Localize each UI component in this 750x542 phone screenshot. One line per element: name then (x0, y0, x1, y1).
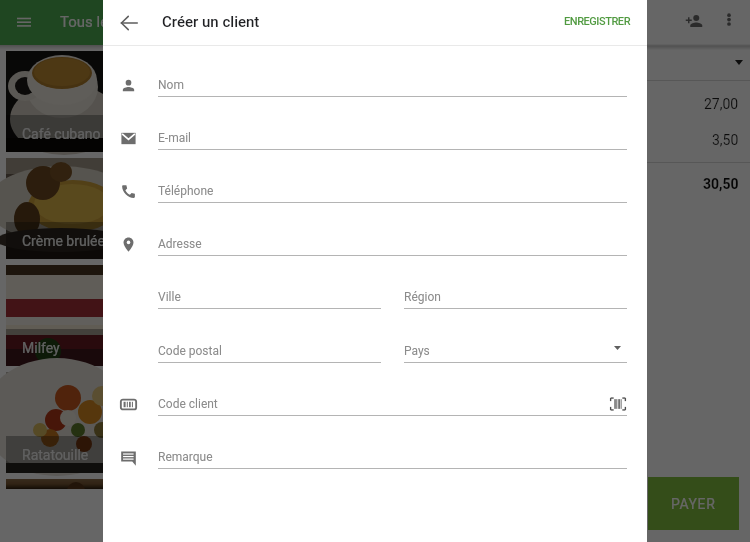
button[interactable]: PAYER (648, 477, 739, 530)
button[interactable]: Code client (158, 389, 627, 415)
staticText: Créer un client (162, 13, 260, 31)
button[interactable]: Add customer (673, 4, 713, 44)
button[interactable]: Café cubano (6, 51, 641, 152)
button[interactable]: Crème brulée (6, 158, 641, 259)
other: Select country (614, 346, 621, 350)
staticText: Nom (158, 78, 184, 92)
button[interactable]: Milfey (6, 265, 641, 366)
staticText: Région (404, 290, 441, 304)
other: Scan barcode (609, 395, 627, 413)
button[interactable]: Menu (8, 8, 40, 40)
staticText: Ville (158, 290, 181, 304)
staticText: Code postal (158, 344, 222, 358)
button[interactable]: Ratatouille (6, 372, 641, 473)
button[interactable]: Région (404, 282, 627, 308)
staticText: PAYER (671, 496, 716, 512)
button[interactable]: Ville (158, 282, 381, 308)
button[interactable]: Back (111, 5, 147, 41)
button[interactable]: Remarque (158, 442, 627, 468)
staticText: Milfey (22, 340, 60, 356)
staticText: Tous les produits (60, 13, 175, 31)
staticText: E-mail (158, 131, 192, 145)
button[interactable]: Tarte tatin (6, 479, 641, 489)
button[interactable]: More options (719, 4, 749, 34)
staticText: Pays (404, 344, 430, 358)
button[interactable]: Select customer (647, 46, 750, 80)
staticText: Code client (158, 397, 218, 411)
button[interactable]: Adresse (158, 229, 627, 255)
staticText: 30,50 (703, 176, 739, 192)
staticText: 3,50 (712, 132, 739, 148)
staticText: Crème brulée (22, 233, 105, 249)
button[interactable]: ENREGISTRER (550, 6, 645, 37)
button[interactable]: E-mail (158, 123, 627, 149)
staticText: Téléphone (158, 184, 214, 198)
staticText: Ratatouille (22, 447, 89, 463)
button[interactable]: Nom (158, 70, 627, 96)
button[interactable]: Code postal (158, 336, 381, 362)
staticText: Adresse (158, 237, 202, 251)
button[interactable]: Téléphone (158, 176, 627, 202)
staticText: Café cubano (22, 126, 101, 142)
staticText: ENREGISTRER (564, 15, 631, 28)
staticText: Remarque (158, 450, 213, 464)
button[interactable]: Pays (404, 336, 627, 362)
staticText: 27,00 (704, 96, 739, 112)
